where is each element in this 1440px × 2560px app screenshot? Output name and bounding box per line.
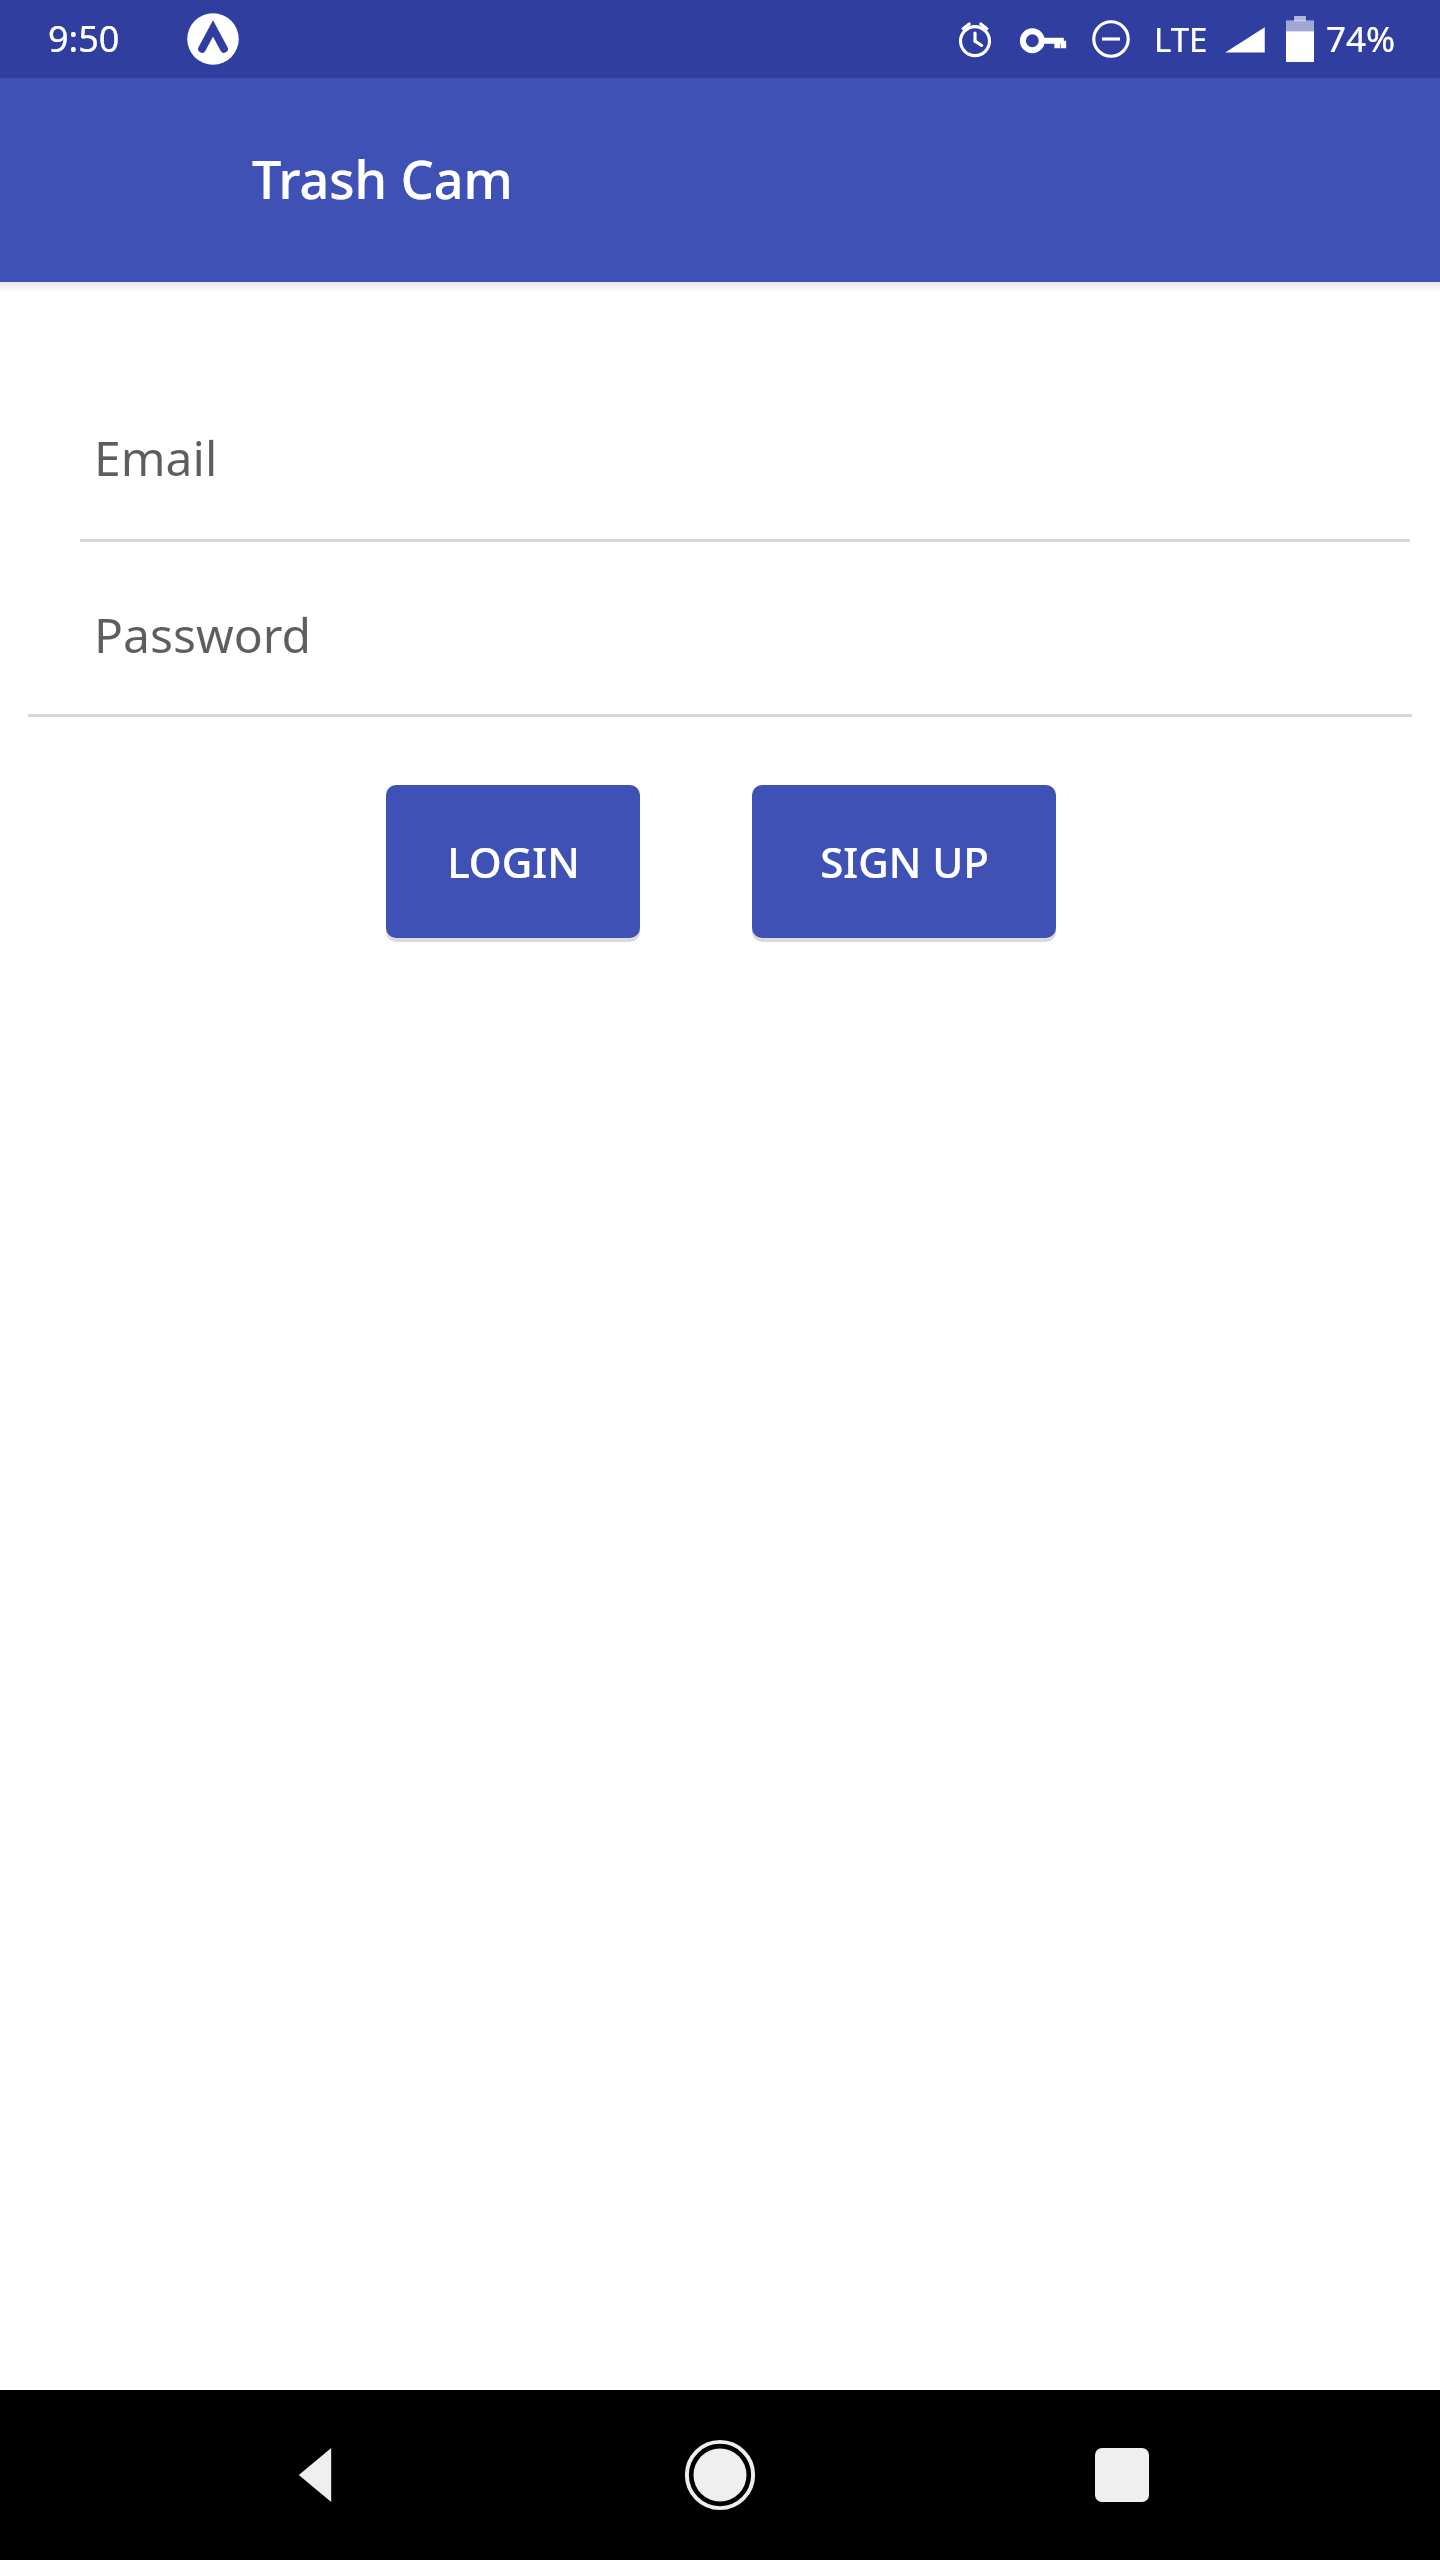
staticText: 9:50 — [48, 14, 120, 63]
staticText: SIGN UP — [820, 833, 989, 890]
staticText: 74% — [1326, 15, 1396, 63]
staticText: Password — [94, 602, 312, 667]
button[interactable]: LOGIN — [386, 785, 640, 938]
button[interactable]: SIGN UP — [752, 785, 1056, 938]
staticText: Email — [94, 425, 218, 490]
button[interactable]: Home — [630, 2390, 810, 2560]
button[interactable]: Password — [28, 602, 1412, 717]
button[interactable]: Recents — [1032, 2390, 1212, 2560]
staticText: LOGIN — [447, 833, 580, 890]
staticText: LTE — [1154, 17, 1208, 62]
button[interactable]: Back — [228, 2390, 408, 2560]
staticText: Trash Cam — [252, 143, 513, 214]
button[interactable]: Email — [80, 425, 1410, 542]
